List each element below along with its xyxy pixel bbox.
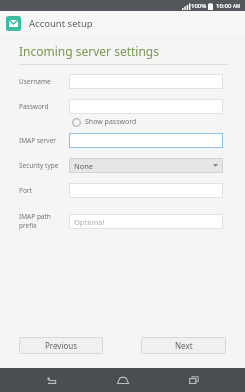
staticText: 10:00 — [216, 2, 232, 10]
staticText: Password — [19, 102, 49, 111]
button[interactable] — [69, 133, 223, 148]
staticText: None — [74, 161, 94, 171]
staticText: Optional — [74, 217, 105, 227]
staticText: Account setup — [29, 17, 93, 30]
staticText: IMAP server — [19, 136, 56, 145]
staticText: IMAP path prefix — [19, 212, 69, 230]
staticText: Previous — [45, 340, 78, 351]
button[interactable]: Show password — [72, 117, 137, 127]
button[interactable]: Previous — [19, 337, 103, 354]
staticText: Security type — [19, 161, 59, 170]
staticText: Incoming server settings — [19, 43, 159, 59]
staticText: AM — [233, 3, 241, 9]
button[interactable] — [69, 183, 223, 198]
button[interactable]: Optional — [69, 214, 223, 229]
button[interactable]: Recent apps — [174, 368, 214, 392]
button[interactable] — [69, 99, 223, 114]
button[interactable] — [69, 74, 223, 89]
staticText: Next — [175, 340, 193, 351]
button[interactable]: Next — [141, 337, 226, 354]
button[interactable]: Email app icon — [6, 16, 21, 31]
staticText: 100% — [191, 2, 207, 10]
button[interactable]: Security type dropdown — [69, 158, 223, 173]
button[interactable]: Home — [103, 368, 143, 392]
staticText: Show password — [85, 117, 137, 127]
button[interactable]: Back — [31, 368, 71, 392]
staticText: Port — [19, 186, 32, 195]
staticText: Username — [19, 77, 51, 86]
